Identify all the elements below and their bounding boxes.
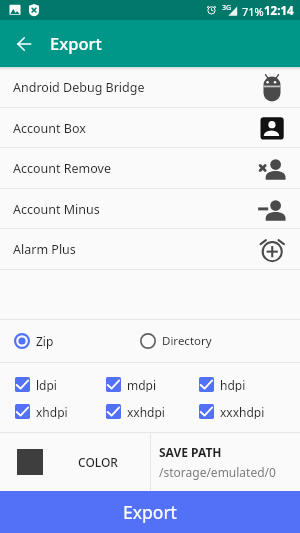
- staticText: 3G: [222, 3, 232, 13]
- button[interactable]: xxxhdpi: [184, 404, 300, 419]
- staticText: /storage/emulated/0: [159, 464, 276, 480]
- button[interactable]: Zip: [0, 320, 140, 362]
- button[interactable]: xhdpi: [0, 404, 91, 419]
- staticText: 71%: [242, 4, 264, 19]
- button[interactable]: Account Box: [0, 108, 300, 149]
- staticText: xxxhdpi: [220, 404, 265, 419]
- staticText: 12:14: [264, 3, 294, 19]
- staticText: xxhdpi: [127, 404, 165, 419]
- button[interactable]: Alarm Plus: [0, 229, 300, 270]
- staticText: COLOR: [78, 454, 118, 470]
- staticText: Account Minus: [13, 201, 100, 218]
- staticText: Android Debug Bridge: [13, 79, 145, 96]
- button[interactable]: xxhdpi: [91, 404, 184, 419]
- staticText: SAVE PATH: [159, 444, 222, 460]
- staticText: hdpi: [220, 377, 246, 392]
- staticText: xhdpi: [36, 404, 68, 419]
- button[interactable]: Account Minus: [0, 189, 300, 230]
- button[interactable]: Android Debug Bridge: [0, 67, 300, 108]
- button[interactable]: Directory: [140, 320, 300, 362]
- button[interactable]: COLOR: [0, 433, 150, 491]
- staticText: Export: [50, 32, 102, 54]
- button[interactable]: SAVE PATH: [151, 433, 300, 491]
- button[interactable]: hdpi: [184, 377, 300, 392]
- button[interactable]: Back: [0, 20, 47, 67]
- button[interactable]: mdpi: [91, 377, 184, 392]
- staticText: Account Box: [13, 120, 86, 137]
- staticText: Alarm Plus: [13, 241, 76, 258]
- button[interactable]: Export: [0, 491, 300, 533]
- staticText: Zip: [36, 333, 54, 349]
- button[interactable]: ldpi: [0, 377, 91, 392]
- staticText: mdpi: [127, 377, 157, 392]
- button[interactable]: Account Remove: [0, 148, 300, 189]
- staticText: ldpi: [36, 377, 57, 392]
- staticText: Export: [123, 500, 177, 524]
- staticText: Account Remove: [13, 160, 111, 177]
- staticText: Directory: [162, 333, 212, 349]
